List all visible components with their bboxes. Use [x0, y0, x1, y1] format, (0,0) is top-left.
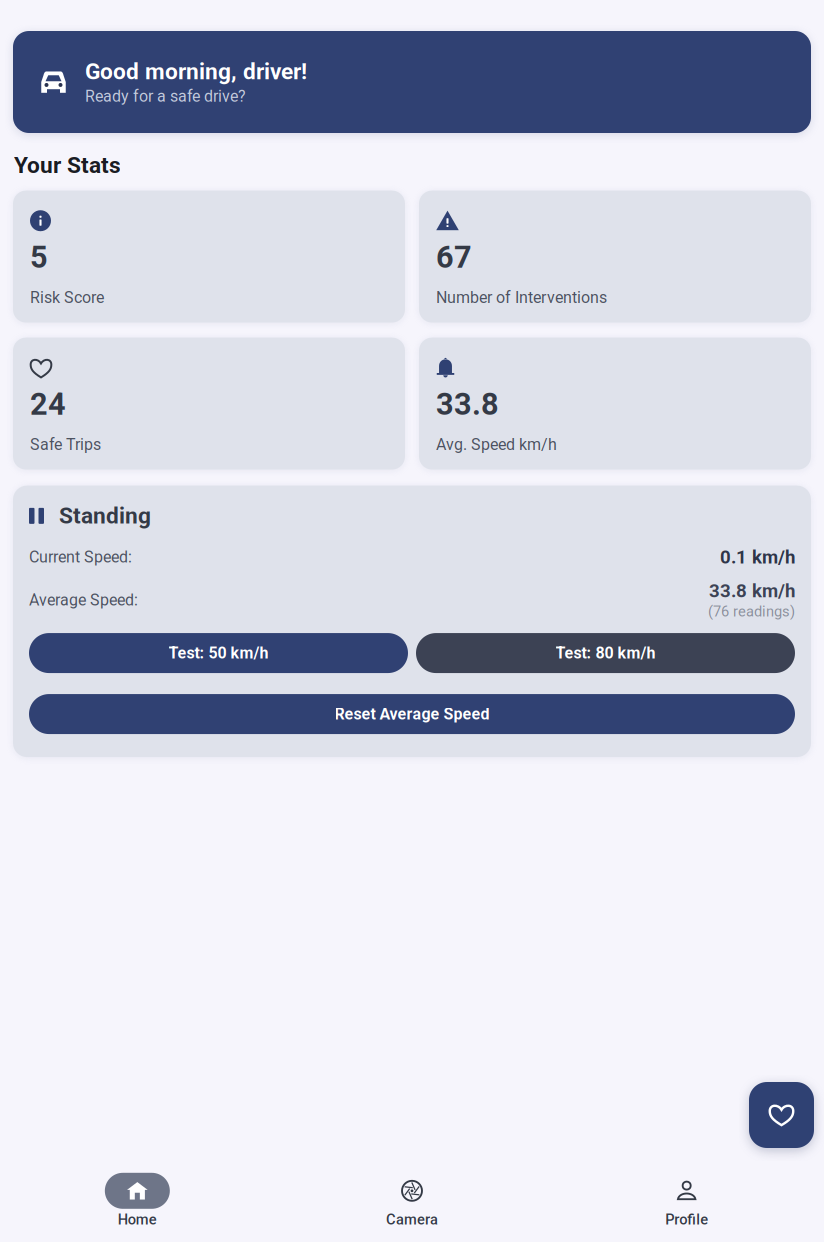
staticText: 33.8 km/h — [709, 580, 795, 602]
staticText: Your Stats — [14, 152, 121, 179]
staticText: Test: 80 km/h — [555, 644, 655, 662]
staticText: Home — [118, 1211, 157, 1228]
staticText: Current Speed: — [29, 548, 132, 566]
button[interactable]: Test: 50 km/h — [29, 633, 408, 673]
staticText: Reset Average Speed — [334, 705, 489, 723]
staticText: Number of Interventions — [436, 288, 607, 307]
staticText: Risk Score — [30, 288, 104, 307]
staticText: Camera — [386, 1211, 438, 1228]
staticText: Average Speed: — [29, 591, 138, 609]
button[interactable]: Favorites — [749, 1082, 814, 1148]
staticText: Test: 50 km/h — [168, 644, 268, 662]
button[interactable]: Camera — [275, 1173, 549, 1228]
button[interactable]: Reset Average Speed — [29, 694, 795, 734]
staticText: Avg. Speed km/h — [436, 435, 557, 454]
staticText: Ready for a safe drive? — [85, 87, 246, 106]
staticText: Safe Trips — [30, 435, 101, 454]
staticText: Profile — [665, 1211, 708, 1228]
staticText: 5 — [30, 239, 48, 275]
button[interactable]: Home — [0, 1173, 275, 1228]
button[interactable]: Profile — [549, 1173, 824, 1228]
staticText: 24 — [30, 386, 66, 422]
staticText: Standing — [59, 503, 151, 529]
staticText: Good morning, driver! — [85, 58, 307, 85]
button[interactable]: Test: 80 km/h — [416, 633, 795, 673]
staticText: 67 — [436, 239, 472, 275]
staticText: 33.8 — [436, 386, 499, 422]
staticText: (76 readings) — [708, 603, 795, 620]
staticText: 0.1 km/h — [720, 546, 795, 568]
